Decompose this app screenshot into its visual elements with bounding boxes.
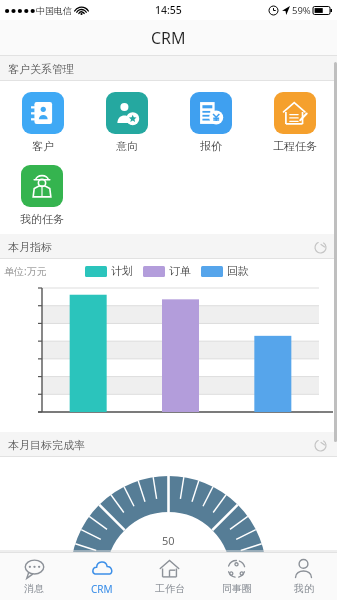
staticText: 工程任务	[273, 139, 317, 153]
button[interactable]: 工程任务	[253, 90, 337, 155]
button[interactable]: 同事圈	[203, 553, 270, 600]
staticText: 单位:万元	[4, 264, 47, 278]
button[interactable]: 报价	[169, 90, 253, 155]
button[interactable]: 刷新	[311, 436, 329, 454]
staticText: 计划	[111, 264, 133, 278]
staticText: CRM	[151, 27, 186, 49]
staticText: 客户	[32, 139, 54, 153]
staticText: 工作台	[155, 582, 185, 595]
staticText: 本月目标完成率	[8, 438, 85, 452]
staticText: 59%	[292, 4, 311, 17]
button[interactable]: 刷新	[311, 238, 329, 256]
staticText: 中国电信	[36, 5, 72, 16]
button[interactable]: 客户	[0, 90, 85, 155]
staticText: 订单	[169, 264, 191, 278]
staticText: 客户关系管理	[8, 62, 74, 76]
staticText: 消息	[24, 582, 44, 595]
staticText: 我的	[294, 582, 314, 595]
staticText: 我的任务	[20, 212, 64, 226]
staticText: CRM	[91, 582, 113, 596]
button[interactable]: 我的任务	[0, 163, 84, 228]
button[interactable]: 意向	[85, 90, 169, 155]
button[interactable]: 消息	[0, 553, 68, 600]
staticText: 报价	[200, 139, 222, 153]
staticText: 50	[162, 533, 175, 548]
button[interactable]: 工作台	[136, 553, 203, 600]
staticText: 14:55	[155, 3, 182, 17]
staticText: 意向	[116, 139, 138, 153]
staticText: 回款	[227, 264, 249, 278]
button[interactable]: CRM	[68, 553, 136, 600]
button[interactable]: 我的	[270, 553, 337, 600]
staticText: 同事圈	[222, 582, 252, 595]
staticText: 本月指标	[8, 240, 52, 254]
